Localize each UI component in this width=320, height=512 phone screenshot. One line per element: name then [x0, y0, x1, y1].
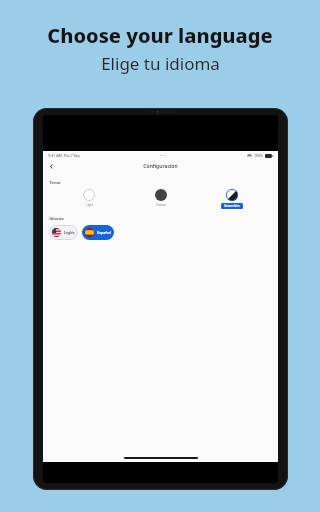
staticText: Idioma — [49, 216, 64, 222]
button[interactable]: Light — [59, 188, 119, 208]
staticText: • • • — [160, 153, 166, 158]
button[interactable]: Oscuro — [131, 188, 191, 208]
staticText: Tema — [49, 180, 61, 186]
staticText: Español — [97, 230, 111, 235]
button[interactable]: Back — [46, 161, 57, 172]
staticText: Configuración — [143, 163, 178, 170]
button[interactable]: Automático — [202, 188, 262, 210]
staticText: Light — [86, 203, 93, 207]
staticText: Automático — [224, 204, 240, 208]
staticText: Oscuro — [156, 203, 166, 207]
staticText: Choose your language — [47, 22, 273, 49]
staticText: Elige tu idioma — [101, 52, 220, 75]
staticText: Inglés — [64, 230, 75, 235]
staticText: 100% — [254, 153, 263, 158]
staticText: 9:41 AM Thu 7 Sep — [48, 153, 80, 158]
button[interactable]: Español — [82, 225, 114, 240]
button[interactable]: Inglés — [49, 225, 78, 240]
